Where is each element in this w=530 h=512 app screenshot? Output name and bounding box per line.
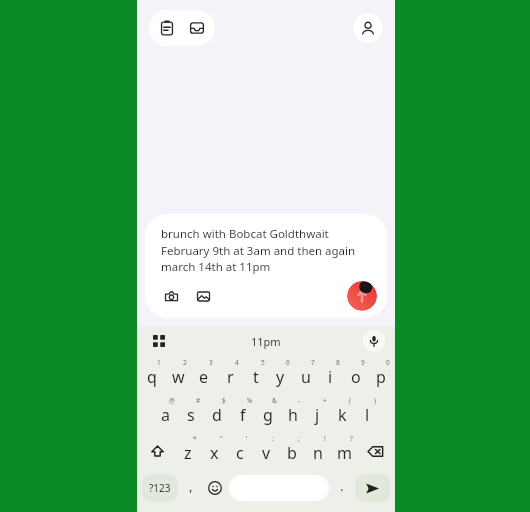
staticText: @ <box>169 396 175 405</box>
button[interactable]: ; <box>279 432 305 470</box>
staticText: h <box>288 404 298 426</box>
staticText: b <box>287 442 297 464</box>
staticText: 2 <box>183 358 187 367</box>
button[interactable]: Emoji <box>202 470 227 506</box>
staticText: 7 <box>311 358 315 367</box>
staticText: ) <box>374 396 376 405</box>
button[interactable]: # <box>178 394 204 432</box>
staticText: 11pm <box>251 334 281 349</box>
button[interactable]: " <box>201 432 227 470</box>
button[interactable]: Camera <box>157 282 185 310</box>
button[interactable]: Backspace <box>357 432 393 470</box>
staticText: s <box>187 404 195 426</box>
staticText: . <box>340 477 344 495</box>
button[interactable]: , <box>180 470 202 506</box>
button[interactable]: 3 <box>191 356 217 394</box>
button[interactable]: ( <box>330 394 355 432</box>
staticText: 0 <box>386 358 390 367</box>
button[interactable]: @ <box>152 394 178 432</box>
button[interactable]: Inbox <box>182 13 212 43</box>
staticText: l <box>365 404 370 426</box>
button[interactable]: Send <box>347 281 377 311</box>
staticText: r <box>227 366 234 388</box>
staticText: ! <box>324 434 326 443</box>
staticText: 9 <box>361 358 365 367</box>
staticText: 5 <box>261 358 265 367</box>
staticText: w <box>172 366 185 388</box>
button[interactable]: ' <box>227 432 253 470</box>
button[interactable]: Shift <box>139 432 175 470</box>
staticText: : <box>272 434 274 443</box>
button[interactable]: 0 <box>368 356 393 394</box>
staticText: # <box>196 396 201 405</box>
button[interactable]: Space <box>229 475 329 501</box>
staticText: , <box>189 477 193 495</box>
button[interactable]: % <box>230 394 255 432</box>
staticText: 6 <box>286 358 290 367</box>
staticText: 3 <box>209 358 213 367</box>
staticText: ' <box>246 434 248 443</box>
button[interactable]: Keyboard options <box>147 329 171 353</box>
button[interactable]: 8 <box>318 356 343 394</box>
button[interactable]: * <box>175 432 201 470</box>
staticText: t <box>253 366 259 388</box>
staticText: ( <box>349 396 351 405</box>
staticText: " <box>220 434 223 443</box>
button[interactable]: brunch with Bobcat Goldthwait February 9… <box>145 214 387 318</box>
staticText: f <box>240 404 246 426</box>
staticText: - <box>298 396 301 405</box>
staticText: i <box>328 366 333 388</box>
staticText: u <box>301 366 311 388</box>
button[interactable]: . <box>331 470 353 506</box>
button[interactable]: Account <box>353 13 383 43</box>
staticText: n <box>313 442 323 464</box>
staticText: brunch with Bobcat Goldthwait February 9… <box>161 226 371 274</box>
staticText: g <box>263 404 273 426</box>
staticText: q <box>147 366 157 388</box>
staticText: ? <box>350 434 353 443</box>
button[interactable]: 9 <box>343 356 368 394</box>
button[interactable]: 1 <box>139 356 165 394</box>
staticText: z <box>184 442 192 464</box>
button[interactable]: + <box>305 394 330 432</box>
staticText: % <box>247 396 253 405</box>
staticText: ?123 <box>149 481 171 495</box>
staticText: m <box>337 442 352 464</box>
staticText: p <box>376 366 386 388</box>
staticText: 8 <box>336 358 340 367</box>
staticText: o <box>351 366 361 388</box>
button[interactable]: Send <box>355 474 390 502</box>
staticText: x <box>210 442 219 464</box>
button[interactable]: 6 <box>268 356 293 394</box>
staticText: * <box>193 434 197 443</box>
button[interactable]: 11pm <box>241 332 291 351</box>
button[interactable]: 4 <box>217 356 243 394</box>
button[interactable]: Gallery <box>189 282 217 310</box>
button[interactable]: : <box>253 432 279 470</box>
staticText: v <box>262 442 271 464</box>
button[interactable]: & <box>255 394 280 432</box>
button[interactable]: 5 <box>243 356 268 394</box>
staticText: 4 <box>235 358 239 367</box>
staticText: c <box>236 442 244 464</box>
staticText: y <box>276 366 285 388</box>
staticText: d <box>212 404 222 426</box>
staticText: + <box>323 396 327 405</box>
staticText: k <box>338 404 347 426</box>
staticText: 1 <box>157 358 161 367</box>
staticText: & <box>272 396 277 405</box>
button[interactable]: ?123 <box>142 474 178 502</box>
staticText: ; <box>298 434 300 443</box>
staticText: $ <box>222 396 226 405</box>
button[interactable]: 7 <box>293 356 318 394</box>
button[interactable]: $ <box>204 394 230 432</box>
button[interactable]: ! <box>305 432 331 470</box>
button[interactable]: ? <box>331 432 357 470</box>
button[interactable]: ) <box>355 394 380 432</box>
button[interactable]: - <box>280 394 305 432</box>
staticText: e <box>199 366 209 388</box>
button[interactable]: 2 <box>165 356 191 394</box>
button[interactable]: Notes <box>152 13 182 43</box>
staticText: j <box>315 404 320 426</box>
button[interactable]: Voice input <box>363 330 385 352</box>
